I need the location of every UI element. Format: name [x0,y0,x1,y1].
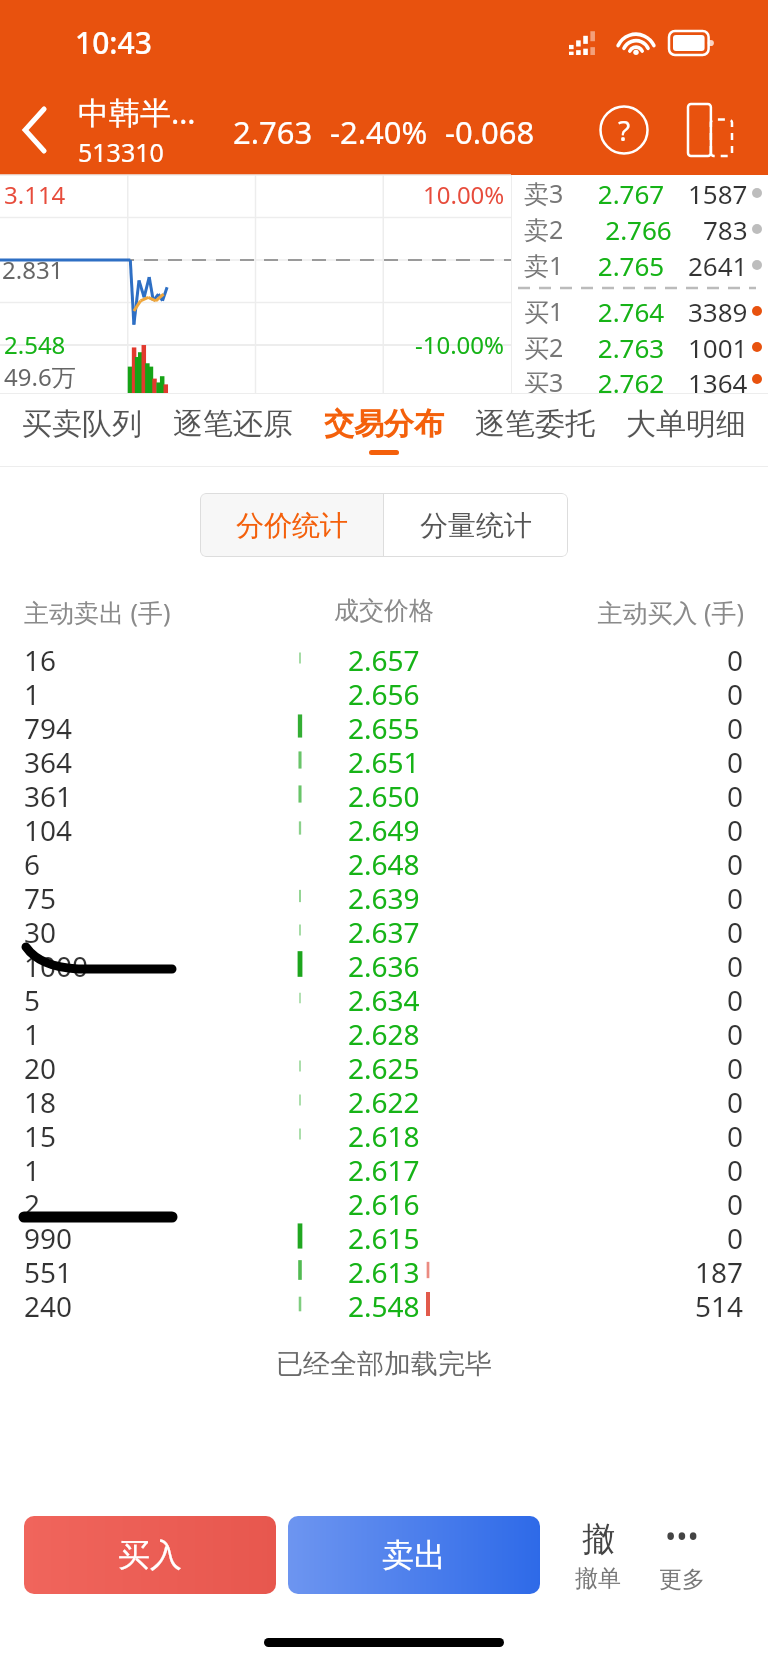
staticText: 主动买入 (手) [504,595,744,629]
staticText: 0 [727,1049,744,1083]
button[interactable]: 361 [0,777,768,811]
staticText: 1 [24,1015,41,1049]
staticText: 逐笔委托 [475,405,595,443]
button[interactable]: 卖3 [524,175,762,211]
button[interactable]: 1 [0,675,768,709]
staticText: 买1 [524,294,564,328]
staticText: 5 [24,981,41,1015]
staticText: 1 [24,675,41,709]
staticText: 2.656 [348,675,420,709]
button[interactable]: 买卖队列 [18,399,146,461]
staticText: 买入 [118,1535,182,1575]
button[interactable]: 1 [0,1015,768,1049]
button[interactable]: 买2 [524,329,762,365]
button[interactable]: 364 [0,743,768,777]
button[interactable]: 75 [0,879,768,913]
staticText: 6 [24,845,41,879]
staticText: 2.548 [4,328,66,361]
button[interactable]: 逐笔还原 [169,399,297,461]
button[interactable]: Back [0,95,70,165]
button[interactable]: 30 [0,913,768,947]
button[interactable]: 240 [0,1287,768,1321]
button[interactable]: 买入 [24,1516,276,1594]
button[interactable]: 1 [0,1151,768,1185]
button[interactable]: 卖2 [524,211,762,247]
staticText: 卖2 [524,212,564,246]
staticText: 2.636 [348,947,420,981]
button[interactable]: 20 [0,1049,768,1083]
staticText: 364 [24,743,73,777]
button[interactable]: 18 [0,1083,768,1117]
staticText: 2.618 [348,1117,420,1151]
button[interactable]: Landscape [676,96,744,164]
staticText: 撤 [582,1518,615,1560]
staticText: 10.00% [423,178,505,211]
button[interactable]: 分量统计 [384,493,568,557]
staticText: 2.613 [348,1253,420,1287]
button[interactable]: 逐笔委托 [471,399,599,461]
button[interactable]: 1000 [0,947,768,981]
button[interactable]: 16 [0,641,768,675]
staticText: 2.625 [348,1049,420,1083]
button[interactable]: 分价统计 [200,493,383,557]
staticText: 3.114 [4,178,66,211]
staticText: 已经全部加载完毕 [276,1347,492,1381]
staticText: 分量统计 [420,508,532,543]
button[interactable]: 买3 [524,365,762,393]
button[interactable]: 撤 [556,1518,640,1593]
staticText: 逐笔还原 [173,405,293,443]
staticText: 16 [24,641,57,675]
staticText: 0 [727,1185,744,1219]
staticText: 2.650 [348,777,420,811]
staticText: 0 [727,709,744,743]
staticText: 2.615 [348,1219,420,1253]
staticText: 卖1 [524,248,564,282]
staticText: 15 [24,1117,57,1151]
staticText: 0 [727,879,744,913]
staticText: 361 [24,777,73,811]
staticText: 2.831 [2,253,64,286]
button[interactable]: 794 [0,709,768,743]
staticText: 10:43 [75,22,152,63]
staticText: 0 [727,777,744,811]
button[interactable]: 中韩半… [78,91,196,169]
staticText: 大单明细 [626,405,746,443]
staticText: 撤单 [575,1564,621,1593]
button[interactable]: 104 [0,811,768,845]
button[interactable]: 5 [0,981,768,1015]
staticText: 买2 [524,330,564,364]
staticText: 2.648 [348,845,420,879]
staticText: 2 [24,1185,41,1219]
staticText: 分价统计 [236,508,348,543]
button[interactable]: 15 [0,1117,768,1151]
button[interactable]: 交易分布 [320,399,448,461]
staticText: 2.548 [348,1287,420,1321]
staticText: 主动卖出 (手) [24,595,264,629]
button[interactable]: 6 [0,845,768,879]
staticText: 买卖队列 [22,405,142,443]
staticText: 0 [727,947,744,981]
staticText: 3389 [688,294,748,329]
staticText: 0 [727,1083,744,1117]
button[interactable]: Help [592,98,656,162]
button[interactable]: ••• [640,1516,724,1594]
staticText: 交易分布 [324,405,444,443]
button[interactable]: 卖出 [288,1516,540,1594]
button[interactable]: 大单明细 [622,399,750,461]
staticText: 2.762 [574,365,688,393]
staticText: 2.767 [574,176,688,211]
staticText: -0.068 [445,111,535,153]
staticText: 187 [695,1253,744,1287]
button[interactable]: 990 [0,1219,768,1253]
staticText: 2.628 [348,1015,420,1049]
button[interactable]: 买1 [524,293,762,329]
staticText: -2.40% [330,111,428,153]
staticText: 783 [703,212,748,247]
staticText: 0 [727,1015,744,1049]
staticText: 2.763 [233,111,313,153]
staticText: 2.639 [348,879,420,913]
staticText: 2.649 [348,811,420,845]
button[interactable]: 卖1 [524,247,762,283]
button[interactable]: 551 [0,1253,768,1287]
button[interactable]: 2 [0,1185,768,1219]
